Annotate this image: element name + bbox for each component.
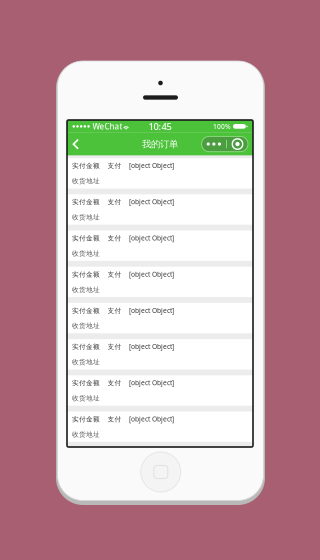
staticText: 实付金额 [72,343,100,351]
staticText: 实付金额 [72,234,100,242]
button[interactable]: 实付金额 [67,267,253,297]
staticText: 收货地址 [72,213,100,221]
staticText: 实付金额 [72,415,100,423]
staticText: [object Object] [129,451,174,460]
staticText: 收货地址 [72,249,100,258]
staticText: [object Object] [129,306,174,315]
staticText: 100% [213,122,231,131]
staticText: [object Object] [129,161,174,170]
staticText: [object Object] [129,270,174,279]
staticText: 支付 [107,307,121,315]
staticText: [object Object] [129,342,174,351]
staticText: 我的订单 [142,138,178,150]
staticText: 实付金额 [72,270,100,279]
staticText: 实付金额 [72,307,100,315]
button[interactable]: Back [72,133,88,155]
staticText: [object Object] [129,378,174,387]
button[interactable]: 实付金额 [67,158,253,188]
staticText: 收货地址 [72,322,100,330]
staticText: 支付 [107,343,121,351]
button[interactable]: 实付金额 [67,339,253,369]
staticText: 支付 [107,198,121,206]
staticText: WeChat [92,121,122,132]
staticText: 实付金额 [72,379,100,387]
staticText: 收货地址 [72,177,100,185]
button[interactable]: 实付金额 [67,194,253,225]
button[interactable]: More options [202,136,248,152]
staticText: 收货地址 [72,394,100,402]
staticText: [object Object] [129,197,174,206]
staticText: 收货地址 [72,430,100,439]
staticText: [object Object] [129,233,174,242]
staticText: 支付 [107,234,121,242]
staticText: 收货地址 [72,286,100,294]
staticText: 支付 [107,379,121,387]
button[interactable]: 实付金额 [67,230,253,261]
button[interactable]: 实付金额 [67,448,253,478]
staticText: 实付金额 [72,198,100,206]
staticText: 收货地址 [72,358,100,366]
staticText: 实付金额 [72,162,100,170]
staticText: 10:45 [148,120,171,133]
button[interactable]: 实付金额 [67,411,253,442]
staticText: 支付 [107,162,121,170]
button[interactable]: 实付金额 [67,375,253,406]
button[interactable]: 实付金额 [67,303,253,333]
staticText: [object Object] [129,414,174,423]
staticText: 支付 [107,415,121,423]
staticText: 支付 [107,270,121,279]
